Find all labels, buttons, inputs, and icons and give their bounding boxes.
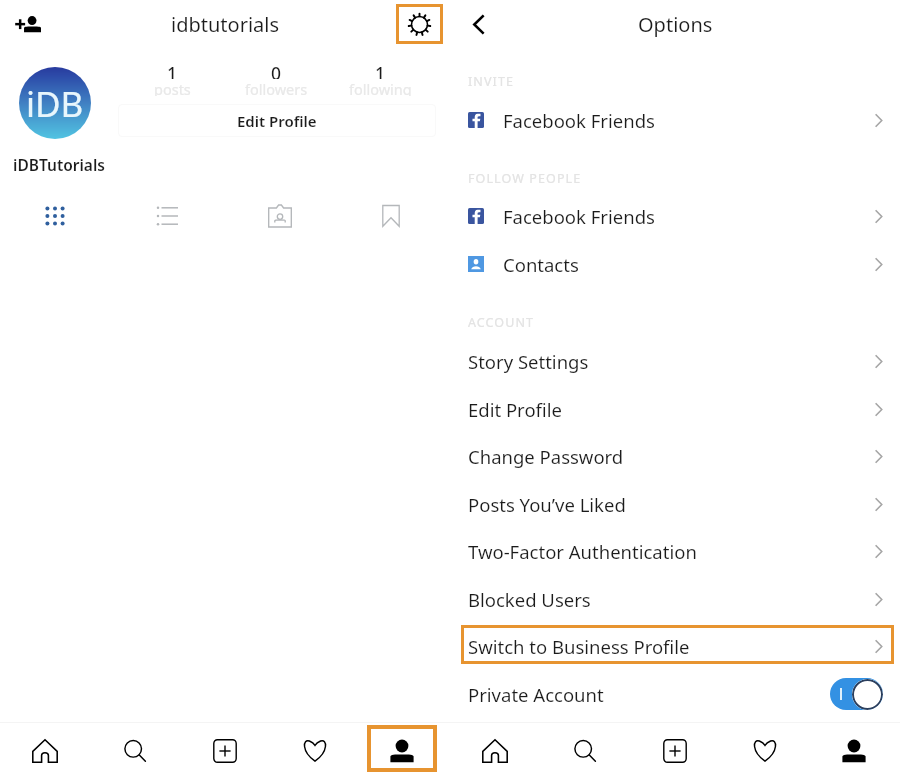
button[interactable]: Settings: [396, 4, 443, 44]
button[interactable]: Contacts: [450, 241, 900, 287]
button[interactable]: Facebook Friends: [450, 193, 900, 239]
button[interactable]: Story Settings: [450, 338, 900, 384]
button[interactable]: Edit Profile: [118, 104, 436, 137]
button[interactable]: Search: [107, 725, 163, 775]
button[interactable]: Profile: [819, 725, 889, 772]
staticText: Posts You’ve Liked: [468, 492, 626, 517]
staticText: Options: [638, 11, 713, 38]
button[interactable]: Facebook Friends: [450, 97, 900, 143]
staticText: Contacts: [503, 252, 579, 277]
button[interactable]: Grid view: [33, 198, 77, 234]
staticText: Change Password: [468, 444, 624, 469]
button[interactable]: Add post: [197, 725, 253, 775]
button[interactable]: List view: [146, 198, 190, 234]
staticText: idbtutorials: [171, 11, 280, 38]
staticText: FOLLOW PEOPLE: [468, 170, 582, 187]
staticText: iDB: [26, 80, 84, 128]
staticText: 0: [271, 61, 282, 79]
button[interactable]: Search: [557, 725, 613, 775]
button[interactable]: Private account toggle: [830, 678, 883, 710]
button[interactable]: Add post: [647, 725, 703, 775]
button[interactable]: Profile: [367, 725, 437, 772]
button[interactable]: Home: [17, 725, 73, 775]
staticText: Edit Profile: [468, 397, 562, 422]
staticText: Story Settings: [468, 349, 589, 374]
button[interactable]: Back: [458, 5, 498, 44]
button[interactable]: 0: [231, 58, 321, 98]
button[interactable]: 1: [127, 58, 217, 98]
button[interactable]: Saved: [369, 198, 413, 234]
staticText: ACCOUNT: [468, 314, 535, 331]
staticText: posts: [154, 79, 191, 96]
button[interactable]: Activity: [737, 725, 793, 775]
button[interactable]: Private Account: [450, 671, 900, 717]
button[interactable]: Blocked Users: [450, 576, 900, 622]
button[interactable]: Switch to Business Profile: [450, 623, 900, 669]
button[interactable]: Tagged: [258, 199, 302, 235]
staticText: iDBTutorials: [13, 154, 105, 175]
staticText: Blocked Users: [468, 587, 591, 612]
staticText: following: [349, 79, 412, 96]
staticText: followers: [245, 79, 308, 96]
button[interactable]: Two-Factor Authentication: [450, 528, 900, 574]
staticText: Edit Profile: [237, 111, 317, 131]
button[interactable]: Edit Profile: [450, 386, 900, 432]
staticText: Switch to Business Profile: [468, 634, 690, 659]
button[interactable]: Posts You’ve Liked: [450, 481, 900, 527]
button[interactable]: Home: [467, 725, 523, 775]
button[interactable]: Activity: [287, 725, 343, 775]
button[interactable]: Change Password: [450, 433, 900, 479]
button[interactable]: Add people: [5, 6, 50, 42]
staticText: Facebook Friends: [503, 108, 655, 133]
button[interactable]: Profile photo: [19, 67, 91, 139]
staticText: 1: [375, 61, 386, 79]
staticText: INVITE: [468, 73, 514, 90]
staticText: 1: [167, 61, 178, 79]
staticText: Two-Factor Authentication: [468, 539, 697, 564]
staticText: Private Account: [468, 682, 604, 707]
staticText: Facebook Friends: [503, 204, 655, 229]
button[interactable]: 1: [335, 58, 425, 98]
